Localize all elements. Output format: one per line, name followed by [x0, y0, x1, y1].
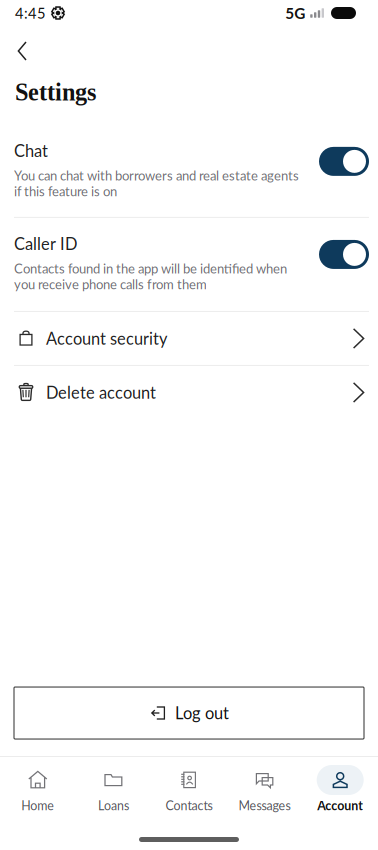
staticText: 4:45 [15, 4, 46, 22]
button[interactable]: Home [0, 765, 76, 813]
button[interactable]: Delete account [14, 366, 369, 419]
staticText: Account security [46, 329, 167, 348]
staticText: Log out [175, 703, 229, 723]
button[interactable]: Back [0, 26, 43, 68]
staticText: Settings [15, 79, 96, 106]
button[interactable]: Log out [14, 687, 364, 739]
button[interactable]: Messages [227, 765, 302, 813]
staticText: 5G [285, 4, 305, 22]
staticText: Contacts [165, 798, 212, 813]
staticText: Chat [14, 141, 48, 161]
button[interactable]: Account [302, 765, 378, 813]
staticText: Home [21, 798, 54, 813]
button[interactable]: Account security [14, 312, 369, 365]
staticText: Delete account [46, 383, 156, 402]
staticText: You can chat with borrowers and real est… [14, 168, 299, 199]
staticText: Messages [239, 798, 291, 813]
button[interactable]: Chat [319, 147, 369, 176]
button[interactable]: Loans [76, 765, 151, 813]
staticText: Loans [98, 798, 129, 813]
staticText: Contacts found in the app will be identi… [14, 261, 287, 292]
staticText: Account [317, 798, 363, 813]
button[interactable]: Caller ID [319, 240, 369, 269]
staticText: Caller ID [14, 234, 77, 254]
button[interactable]: Contacts [151, 765, 227, 813]
